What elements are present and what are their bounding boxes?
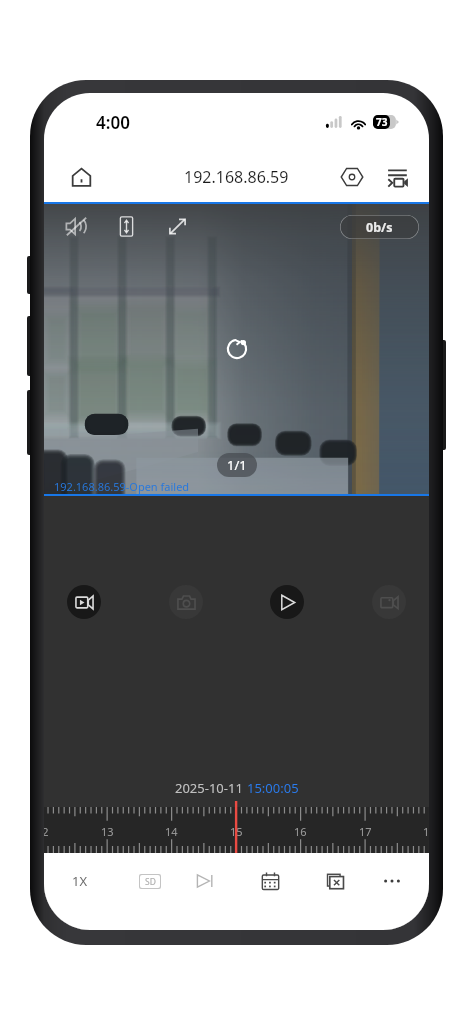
staticText: 12: [44, 824, 49, 839]
button[interactable]: Video: [372, 585, 406, 619]
button[interactable]: 0b/s: [340, 215, 419, 239]
staticText: 15: [230, 824, 243, 839]
staticText: 15:00:05: [247, 779, 299, 797]
button[interactable]: Record: [67, 585, 101, 619]
button[interactable]: More: [370, 859, 414, 903]
button[interactable]: Calendar: [248, 859, 292, 903]
staticText: 13: [101, 824, 114, 839]
staticText: 14: [165, 824, 178, 839]
staticText: 16: [294, 824, 307, 839]
button[interactable]: Channel list: [379, 158, 417, 196]
staticText: 0b/s: [366, 219, 393, 236]
staticText: 18: [423, 824, 429, 839]
button[interactable]: Stream quality SD: [128, 859, 172, 903]
button[interactable]: Fullscreen: [158, 207, 196, 245]
staticText: 73: [376, 115, 388, 129]
button[interactable]: 12: [44, 807, 429, 853]
staticText: 192.168.86.59: [184, 166, 289, 188]
button[interactable]: Settings: [333, 158, 371, 196]
staticText: 2025-10-11: [175, 779, 247, 797]
button[interactable]: Fit screen: [107, 207, 145, 245]
button[interactable]: Next frame: [183, 859, 227, 903]
button[interactable]: 1/1: [217, 453, 257, 477]
button[interactable]: Close all: [313, 859, 357, 903]
staticText: 192.168.86.59-Open failed: [54, 479, 190, 494]
button[interactable]: Play: [270, 585, 304, 619]
staticText: 17: [359, 824, 372, 839]
staticText: 1/1: [227, 456, 247, 474]
staticText: 1X: [72, 872, 88, 890]
staticText: 4:00: [96, 111, 130, 134]
button[interactable]: Playback speed: [58, 859, 102, 903]
button[interactable]: Home: [62, 158, 100, 196]
staticText: SD: [145, 876, 156, 888]
button[interactable]: Mute: [57, 207, 95, 245]
button[interactable]: Snapshot: [169, 585, 203, 619]
